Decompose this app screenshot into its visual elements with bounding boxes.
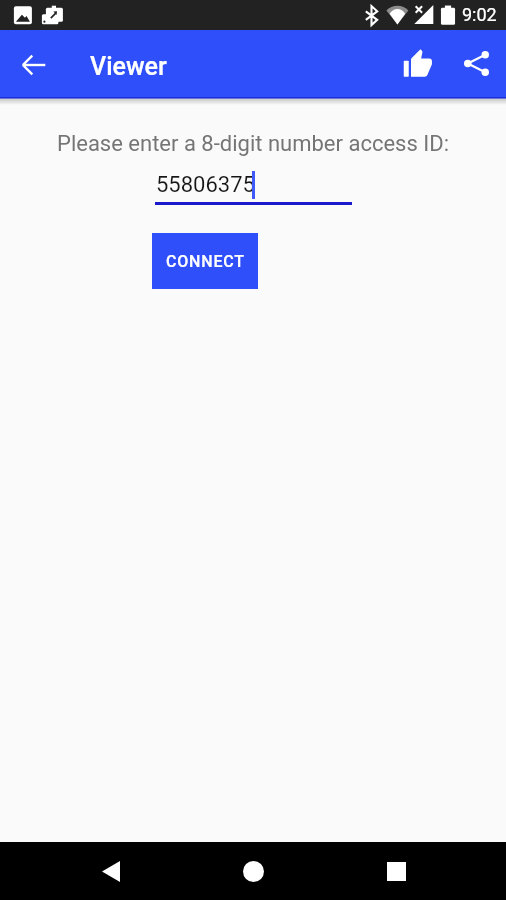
button[interactable]: Access ID input — [155, 170, 352, 205]
staticText: 55806375 — [156, 172, 255, 198]
button[interactable]: CONNECT — [152, 233, 258, 289]
staticText: Please enter a 8-digit number access ID: — [0, 131, 506, 157]
button[interactable]: Back — [81, 842, 141, 900]
staticText: CONNECT — [166, 252, 245, 271]
button[interactable]: Like — [394, 40, 441, 87]
staticText: Viewer — [90, 52, 167, 81]
staticText: 9:02 — [462, 4, 497, 25]
button[interactable]: Share — [453, 40, 500, 87]
button[interactable]: Recent apps — [366, 842, 426, 900]
button[interactable]: Navigate up — [11, 42, 56, 87]
button[interactable]: Home — [223, 842, 283, 900]
